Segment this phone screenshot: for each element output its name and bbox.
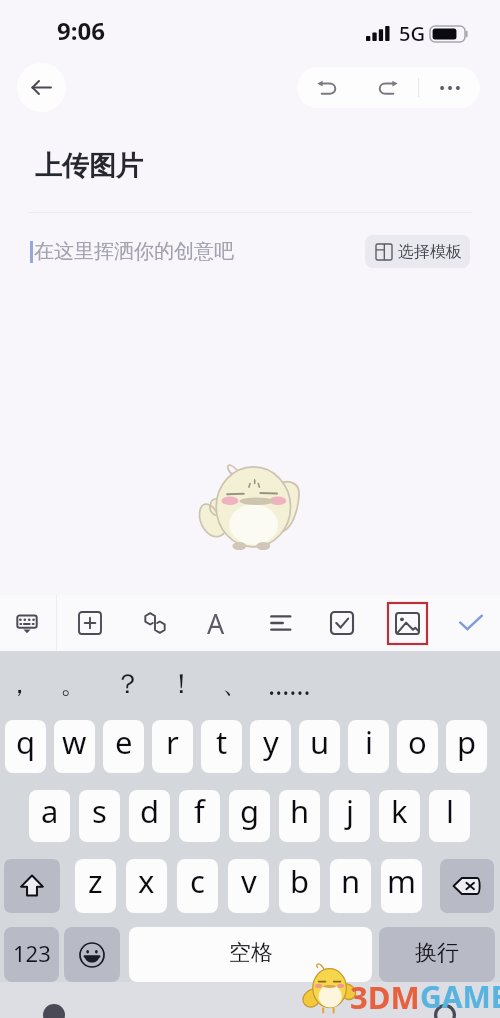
button[interactable]: Insert (62, 595, 118, 651)
button[interactable]: Shift (4, 859, 60, 913)
button[interactable]: k (379, 790, 420, 842)
button[interactable]: 123 (4, 927, 59, 982)
staticText: u (310, 721, 330, 763)
staticText: 上传图片 (35, 149, 143, 183)
staticText: i (365, 721, 373, 763)
staticText: A (207, 605, 225, 642)
button[interactable]: l (429, 790, 470, 842)
staticText: 123 (13, 938, 51, 968)
button[interactable]: y (250, 720, 291, 773)
staticText: c (190, 860, 205, 902)
button[interactable]: q (5, 720, 46, 773)
button[interactable]: z (75, 859, 116, 913)
staticText: r (166, 721, 179, 763)
button[interactable]: s (79, 790, 120, 842)
staticText: 5G (399, 20, 425, 47)
button[interactable]: 。 (50, 663, 96, 705)
button[interactable]: j (329, 790, 370, 842)
button[interactable]: r (152, 720, 193, 773)
staticText: …… (268, 666, 311, 703)
staticText: 在这里挥洒你的创意吧 (34, 239, 234, 264)
staticText: 空格 (229, 939, 273, 967)
button[interactable]: w (54, 720, 95, 773)
staticText: 3DM (350, 976, 420, 1018)
staticText: v (241, 860, 257, 902)
staticText: 9:06 (57, 14, 105, 47)
staticText: n (341, 860, 361, 902)
staticText: e (115, 721, 133, 763)
button[interactable]: t (201, 720, 242, 773)
staticText: j (346, 790, 354, 832)
staticText: GAME (420, 976, 500, 1017)
staticText: z (88, 860, 103, 902)
button[interactable]: …… (266, 663, 312, 705)
button[interactable]: Insert image (379, 595, 435, 651)
button[interactable]: a (29, 790, 70, 842)
button[interactable]: h (279, 790, 320, 842)
staticText: 。 (60, 667, 87, 701)
staticText: b (290, 860, 310, 902)
button[interactable]: Undo (297, 67, 357, 108)
staticText: ！ (168, 667, 195, 701)
staticText: d (140, 790, 160, 832)
button[interactable]: c (177, 859, 218, 913)
staticText: p (457, 721, 477, 763)
button[interactable]: More options (419, 67, 480, 108)
staticText: a (41, 790, 59, 832)
staticText: y (263, 721, 279, 763)
button[interactable]: Checklist (314, 595, 370, 651)
button[interactable]: Text style (188, 595, 244, 651)
button[interactable]: x (126, 859, 167, 913)
button[interactable]: u (299, 720, 340, 773)
staticText: t (216, 721, 228, 763)
staticText: h (290, 790, 310, 832)
button[interactable]: 选择模板 (365, 235, 470, 268)
staticText: ？ (114, 667, 141, 701)
button[interactable]: p (446, 720, 487, 773)
button[interactable]: 换行 (379, 927, 495, 982)
button[interactable]: o (397, 720, 438, 773)
button[interactable]: 空格 (129, 927, 372, 982)
button[interactable]: ！ (158, 663, 204, 705)
button[interactable]: f (179, 790, 220, 842)
staticText: s (92, 790, 107, 832)
button[interactable]: Hide keyboard (0, 595, 55, 651)
button[interactable]: ， (0, 663, 42, 705)
button[interactable]: b (279, 859, 320, 913)
staticText: m (387, 860, 416, 902)
staticText: w (62, 721, 87, 763)
staticText: x (138, 860, 155, 902)
button[interactable]: d (129, 790, 170, 842)
staticText: g (240, 790, 260, 832)
button[interactable]: e (103, 720, 144, 773)
staticText: 、 (222, 667, 249, 701)
button[interactable]: i (348, 720, 389, 773)
button[interactable]: n (330, 859, 371, 913)
staticText: o (408, 721, 427, 763)
button[interactable]: 、 (212, 663, 258, 705)
staticText: k (391, 790, 408, 832)
button[interactable]: Align (253, 595, 309, 651)
button[interactable]: ？ (104, 663, 150, 705)
staticText: q (16, 721, 36, 763)
button[interactable]: Delete (440, 859, 494, 913)
button[interactable]: Redo (357, 67, 418, 108)
button[interactable]: v (228, 859, 269, 913)
staticText: 换行 (415, 939, 459, 967)
button[interactable]: Emoji (64, 927, 120, 982)
staticText: 选择模板 (398, 242, 462, 262)
button[interactable]: Link (127, 595, 183, 651)
staticText: ， (6, 667, 33, 701)
button[interactable]: Back (17, 63, 66, 112)
button[interactable]: Done (443, 595, 499, 651)
button[interactable]: g (229, 790, 270, 842)
staticText: l (446, 790, 454, 832)
staticText: f (194, 790, 205, 832)
button[interactable]: m (381, 859, 422, 913)
